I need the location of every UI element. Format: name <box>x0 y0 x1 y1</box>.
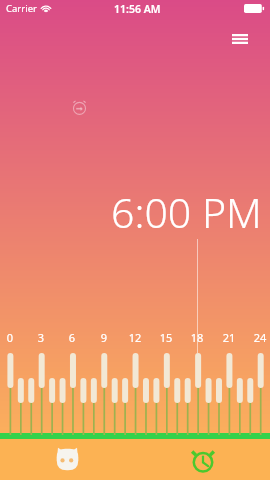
button[interactable]: Sleep <box>0 439 135 480</box>
button[interactable]: Menu <box>222 21 258 57</box>
staticText: 11:56 AM <box>114 2 161 16</box>
staticText: 0 <box>0 330 22 345</box>
staticText: 12 <box>123 330 147 345</box>
staticText: Carrier <box>6 2 37 15</box>
staticText: 6:00 PM <box>111 184 262 240</box>
staticText: 18 <box>185 330 209 345</box>
staticText: 9 <box>92 330 116 345</box>
staticText: 3 <box>29 330 53 345</box>
staticText: 21 <box>217 330 241 345</box>
staticText: 15 <box>154 330 178 345</box>
staticText: 6 <box>60 330 84 345</box>
staticText: 24 <box>248 330 270 345</box>
button[interactable]: Alarms <box>135 439 270 480</box>
button[interactable]: Alarm set <box>68 96 91 119</box>
